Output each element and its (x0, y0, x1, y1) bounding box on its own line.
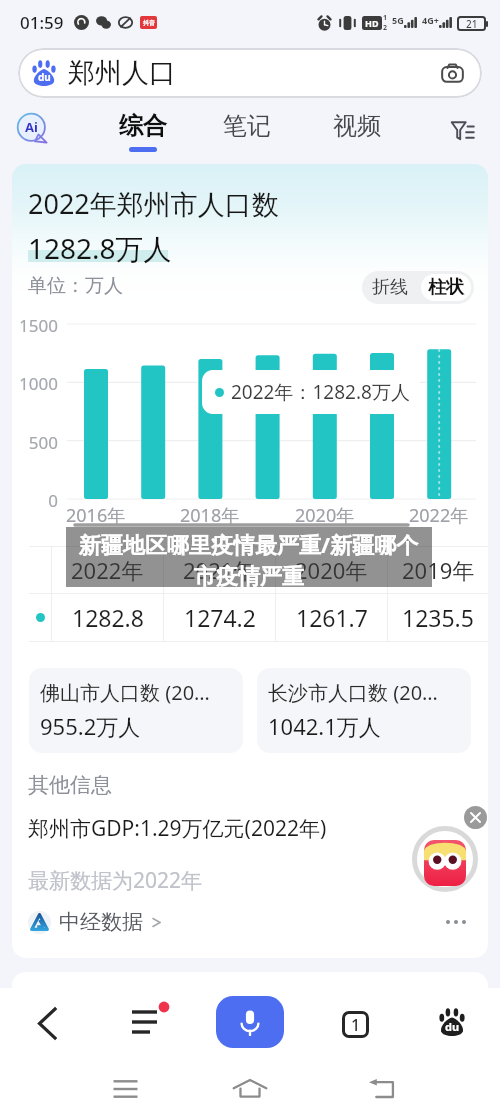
staticText: 1042.1万人 (268, 711, 381, 741)
staticText: Ai (25, 118, 38, 136)
staticText: 折线 (372, 276, 408, 299)
button[interactable]: Filter (444, 112, 480, 148)
staticText: 郑州市GDP:1.29万亿元(2022年) (28, 814, 327, 843)
staticText: 01:59 (20, 11, 64, 34)
button[interactable]: Menu (112, 994, 172, 1054)
staticText: HD (365, 17, 379, 29)
staticText: 500 (28, 431, 58, 454)
staticText: 21 (466, 17, 478, 31)
staticText: 2022年 (71, 555, 144, 585)
staticText: 2016年 (66, 503, 126, 528)
button[interactable]: Back (20, 996, 74, 1050)
staticText: du (445, 1019, 460, 1034)
staticText: 1 (383, 13, 388, 23)
button[interactable]: 综合 (98, 104, 188, 156)
button[interactable]: 佛山市人口数 (20… (29, 668, 243, 753)
button[interactable]: Baidu home (425, 994, 479, 1048)
button[interactable]: AI assistant (16, 112, 50, 146)
button[interactable]: du (18, 48, 482, 98)
button[interactable]: 折线 (362, 271, 418, 304)
button[interactable]: 中经数据 (28, 909, 162, 935)
staticText: 1 (351, 1014, 361, 1036)
staticText: 4G+ (422, 14, 439, 26)
staticText: 市疫情严重 (194, 563, 304, 587)
staticText: 郑州人口 (68, 56, 176, 90)
staticText: 5G (392, 14, 404, 26)
staticText: 抖音 (143, 19, 155, 27)
staticText: 佛山市人口数 (20… (40, 679, 210, 706)
staticText: 1282.8万人 (28, 229, 172, 267)
staticText: 最新数据为2022年 (28, 866, 203, 895)
button[interactable]: Home (224, 1063, 276, 1114)
staticText: 综合 (119, 111, 167, 141)
button[interactable]: More (440, 906, 472, 938)
staticText: 1261.7 (296, 602, 368, 633)
button[interactable]: Close assistant (464, 806, 487, 829)
staticText: 2022年郑州市人口数 (28, 185, 279, 222)
button[interactable]: Tabs (328, 996, 382, 1050)
button[interactable]: 柱状 (421, 274, 471, 301)
staticText: 1000 (19, 372, 58, 395)
staticText: 2020年 (295, 503, 355, 528)
staticText: 长沙市人口数 (20… (268, 679, 438, 706)
staticText: 1282.8 (72, 602, 144, 633)
staticText: 单位：万人 (28, 274, 123, 298)
staticText: 2021年 (183, 555, 256, 585)
staticText: 2019年 (402, 555, 475, 585)
button[interactable]: Recent apps (99, 1063, 151, 1114)
staticText: 柱状 (428, 276, 464, 299)
button[interactable]: 长沙市人口数 (20… (257, 668, 471, 753)
button[interactable]: Back (356, 1063, 408, 1114)
staticText: 1500 (19, 314, 58, 337)
button[interactable]: 视频 (312, 104, 402, 156)
staticText: 955.2万人 (40, 711, 141, 741)
staticText: 视频 (333, 111, 381, 141)
button[interactable]: Voice search (216, 996, 284, 1048)
other: Camera search (441, 62, 464, 85)
staticText: 其他信息 (28, 772, 112, 798)
staticText: 笔记 (223, 111, 271, 141)
button[interactable]: Assistant (412, 826, 478, 892)
staticText: 2018年 (180, 503, 240, 528)
staticText: 1274.2 (184, 602, 256, 633)
staticText: 中经数据 (59, 909, 143, 935)
button[interactable]: 笔记 (202, 104, 292, 156)
staticText: 2022年：1282.8万人 (231, 379, 410, 405)
staticText: 1235.5 (402, 602, 474, 633)
staticText: 2 (383, 23, 388, 33)
staticText: 2020年 (295, 555, 368, 585)
staticText: 新疆地区哪里疫情最严重/新疆哪个 (79, 529, 419, 559)
staticText: du (38, 70, 51, 84)
staticText: 2022年 (409, 503, 469, 528)
staticText: 0 (48, 489, 58, 512)
